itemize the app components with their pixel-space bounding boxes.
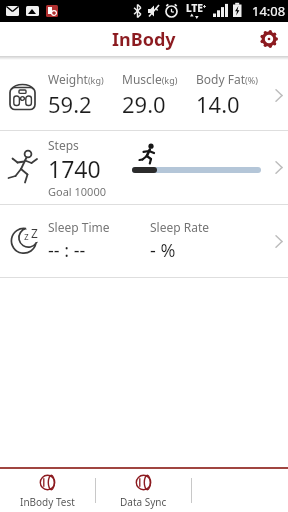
staticText: 29.0 xyxy=(122,89,166,119)
staticText: 59.2 xyxy=(48,89,92,119)
staticText: InBody Test xyxy=(20,495,75,509)
button[interactable]: Data Sync xyxy=(96,469,191,512)
staticText: Data Sync xyxy=(120,495,167,509)
staticText: LTE⁺ xyxy=(186,1,207,15)
staticText: Sleep Rate xyxy=(150,219,210,235)
staticText: Weight(kg) xyxy=(48,71,104,87)
staticText: 1740 xyxy=(48,153,101,184)
button[interactable]: z xyxy=(0,205,288,277)
staticText: Sleep Time xyxy=(48,219,110,235)
staticText: -- : -- xyxy=(48,238,86,263)
button[interactable]: Steps xyxy=(0,131,288,204)
button[interactable]: Weight(kg) xyxy=(0,60,288,130)
staticText: z xyxy=(24,229,29,243)
staticText: Steps xyxy=(48,137,79,153)
button[interactable] xyxy=(258,28,280,50)
button[interactable]: InBody Test xyxy=(0,469,95,512)
staticText: 14.0 xyxy=(196,89,240,119)
staticText: Muscle(kg) xyxy=(122,71,178,87)
staticText: - % xyxy=(150,238,176,263)
staticText: Body Fat(%) xyxy=(196,71,258,87)
staticText: Goal 10000 xyxy=(48,184,106,199)
staticText: InBody xyxy=(112,27,176,52)
staticText: 14:08 xyxy=(252,2,286,20)
staticText: Z xyxy=(31,225,38,241)
